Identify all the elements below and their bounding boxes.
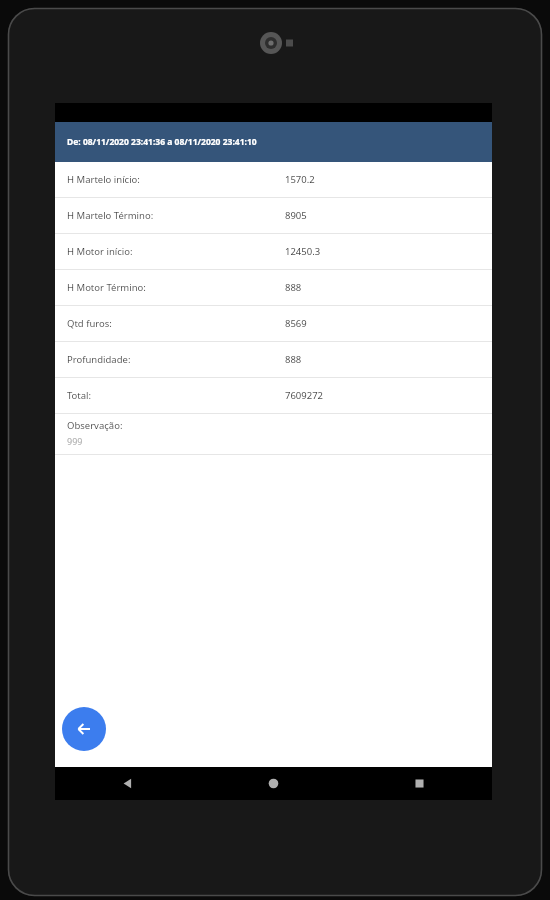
- button[interactable]: Home: [200, 767, 346, 800]
- staticText: Observação:: [67, 419, 123, 432]
- button[interactable]: H Motor início:: [55, 234, 492, 269]
- button[interactable]: Observação:: [55, 414, 492, 454]
- button[interactable]: H Martelo Término:: [55, 198, 492, 233]
- button[interactable]: Back: [55, 767, 200, 800]
- staticText: 888: [285, 281, 302, 294]
- button[interactable]: De: 08/11/2020 23:41:36 a 08/11/2020 23:…: [55, 122, 492, 162]
- button[interactable]: Total:: [55, 378, 492, 413]
- staticText: 12450.3: [285, 245, 321, 258]
- staticText: 8905: [285, 209, 307, 222]
- staticText: De: 08/11/2020 23:41:36 a 08/11/2020 23:…: [67, 136, 257, 148]
- button[interactable]: H Motor Término:: [55, 270, 492, 305]
- staticText: 888: [285, 353, 302, 366]
- staticText: Total:: [67, 389, 285, 402]
- button[interactable]: Recent apps: [346, 767, 492, 800]
- staticText: Qtd furos:: [67, 317, 285, 330]
- staticText: H Martelo início:: [67, 173, 285, 186]
- staticText: 7609272: [285, 389, 324, 402]
- button[interactable]: Qtd furos:: [55, 306, 492, 341]
- staticText: Profundidade:: [67, 353, 285, 366]
- staticText: H Motor Término:: [67, 281, 285, 294]
- staticText: 999: [67, 435, 83, 447]
- button[interactable]: Voltar: [62, 707, 106, 751]
- staticText: H Motor início:: [67, 245, 285, 258]
- button[interactable]: H Martelo início:: [55, 162, 492, 197]
- staticText: 1570.2: [285, 173, 315, 186]
- staticText: H Martelo Término:: [67, 209, 285, 222]
- button[interactable]: Profundidade:: [55, 342, 492, 377]
- staticText: 8569: [285, 317, 307, 330]
